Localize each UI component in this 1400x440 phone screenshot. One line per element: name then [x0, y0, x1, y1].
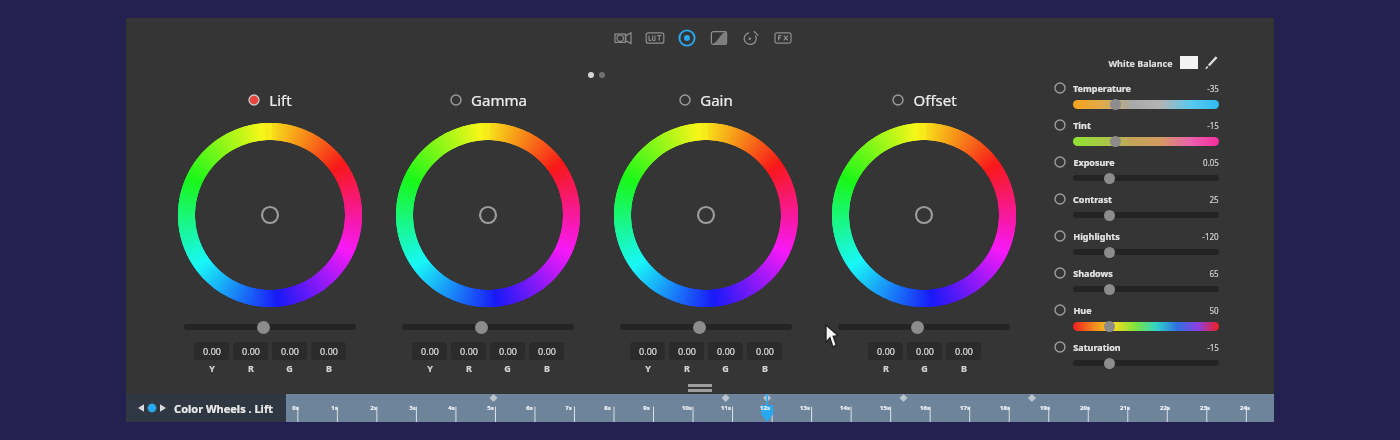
- staticText: 25: [1209, 194, 1219, 205]
- button[interactable]: Offset: [892, 90, 957, 110]
- staticText: 13s: [800, 404, 810, 412]
- staticText: R: [684, 362, 690, 374]
- button[interactable]: [613, 122, 799, 308]
- button[interactable]: Hue: [1054, 304, 1219, 332]
- staticText: 6s: [526, 404, 533, 412]
- staticText: -120: [1202, 231, 1219, 242]
- button[interactable]: Gamma: [450, 90, 527, 110]
- staticText: Color Wheels . Lift: [174, 401, 273, 416]
- button[interactable]: Temperature: [1054, 82, 1219, 110]
- staticText: 4s: [448, 404, 455, 412]
- button[interactable]: Highlights: [1054, 230, 1219, 258]
- button[interactable]: 0.00: [868, 342, 903, 360]
- staticText: 14s: [840, 404, 850, 412]
- staticText: B: [326, 362, 332, 374]
- button[interactable]: [831, 122, 1017, 308]
- staticText: 0.00: [756, 345, 774, 357]
- button[interactable]: [402, 320, 574, 334]
- staticText: G: [722, 362, 729, 374]
- button[interactable]: 0.00: [194, 342, 229, 360]
- button[interactable]: LUT: [645, 28, 665, 48]
- staticText: R: [466, 362, 472, 374]
- button[interactable]: Camera Raw: [613, 28, 633, 48]
- button[interactable]: Shadows: [1054, 267, 1219, 295]
- staticText: 0.00: [678, 345, 696, 357]
- button[interactable]: Gain: [679, 90, 733, 110]
- staticText: 21s: [1120, 404, 1130, 412]
- button[interactable]: Color Wheels . Lift: [126, 394, 286, 422]
- staticText: Shadows: [1073, 267, 1113, 279]
- staticText: 0.00: [717, 345, 735, 357]
- staticText: 11s: [721, 404, 731, 412]
- button[interactable]: 0.00: [669, 342, 704, 360]
- staticText: -15: [1207, 120, 1219, 131]
- staticText: R: [248, 362, 254, 374]
- button[interactable]: 0.00: [272, 342, 307, 360]
- staticText: 10s: [682, 404, 692, 412]
- staticText: Gain: [700, 90, 733, 110]
- staticText: 0.00: [281, 345, 299, 357]
- button[interactable]: 0.00: [708, 342, 743, 360]
- staticText: 1s: [331, 404, 338, 412]
- button[interactable]: Effects: [773, 28, 793, 48]
- staticText: 0.00: [916, 345, 934, 357]
- button[interactable]: [184, 320, 356, 334]
- button[interactable]: 0.00: [529, 342, 564, 360]
- staticText: B: [762, 362, 768, 374]
- button[interactable]: [620, 320, 792, 334]
- staticText: 22s: [1160, 404, 1170, 412]
- button[interactable]: Lift: [248, 90, 292, 110]
- button[interactable]: Color Wheels: [677, 28, 697, 48]
- staticText: Tint: [1073, 119, 1091, 131]
- button[interactable]: 0.00: [233, 342, 268, 360]
- button[interactable]: [395, 122, 581, 308]
- staticText: Highlights: [1073, 230, 1120, 242]
- button[interactable]: 0.00: [311, 342, 346, 360]
- staticText: 2s: [370, 404, 377, 412]
- button[interactable]: 0.00: [747, 342, 782, 360]
- staticText: G: [921, 362, 928, 374]
- button[interactable]: 0.00: [412, 342, 447, 360]
- staticText: 18s: [1000, 404, 1010, 412]
- staticText: 23s: [1200, 404, 1210, 412]
- button[interactable]: 0.00: [490, 342, 525, 360]
- button[interactable]: 0s: [286, 394, 1274, 422]
- button[interactable]: 0.00: [946, 342, 981, 360]
- staticText: 5s: [487, 404, 494, 412]
- staticText: Y: [209, 362, 215, 374]
- staticText: 0s: [292, 404, 299, 412]
- staticText: Contrast: [1073, 193, 1112, 205]
- button[interactable]: Exposure: [1054, 156, 1219, 184]
- staticText: 0.00: [203, 345, 221, 357]
- button[interactable]: Contrast: [1054, 193, 1219, 221]
- button[interactable]: 0.00: [907, 342, 942, 360]
- staticText: 0.00: [242, 345, 260, 357]
- button[interactable]: Curves: [709, 28, 729, 48]
- staticText: 17s: [960, 404, 970, 412]
- staticText: 12s: [760, 404, 770, 412]
- staticText: 0.00: [421, 345, 439, 357]
- staticText: Saturation: [1073, 341, 1121, 353]
- button[interactable]: Tint: [1054, 119, 1219, 147]
- button[interactable]: White Balance: [1108, 55, 1219, 70]
- button[interactable]: [838, 320, 1010, 334]
- staticText: 0.00: [460, 345, 478, 357]
- button[interactable]: Qualifier: [741, 28, 761, 48]
- staticText: G: [504, 362, 511, 374]
- button[interactable]: [177, 122, 363, 308]
- staticText: -15: [1207, 342, 1219, 353]
- button[interactable]: 0.00: [451, 342, 486, 360]
- button[interactable]: 0.00: [630, 342, 665, 360]
- staticText: 8s: [604, 404, 611, 412]
- staticText: 20s: [1080, 404, 1090, 412]
- button[interactable]: Saturation: [1054, 341, 1219, 369]
- staticText: 0.00: [538, 345, 556, 357]
- staticText: 24s: [1240, 404, 1250, 412]
- staticText: Y: [427, 362, 433, 374]
- staticText: Y: [645, 362, 651, 374]
- other: Eyedropper: [1204, 55, 1219, 70]
- staticText: Offset: [913, 90, 957, 110]
- staticText: 0.00: [320, 345, 338, 357]
- staticText: 3s: [409, 404, 416, 412]
- staticText: Gamma: [471, 90, 527, 110]
